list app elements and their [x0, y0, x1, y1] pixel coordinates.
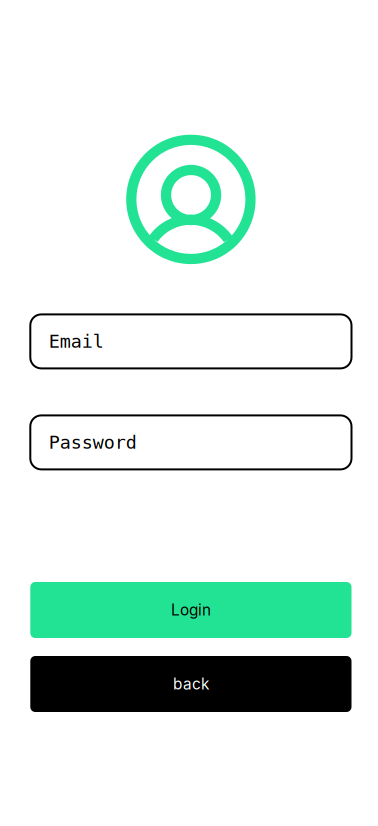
staticText: back — [173, 675, 209, 693]
button[interactable]: Password — [30, 415, 351, 469]
staticText: Login — [171, 601, 211, 619]
button[interactable]: Login — [30, 582, 351, 638]
staticText: Password — [49, 432, 137, 453]
button[interactable]: Email — [30, 314, 351, 368]
staticText: Email — [49, 331, 104, 352]
button[interactable]: back — [30, 656, 351, 712]
